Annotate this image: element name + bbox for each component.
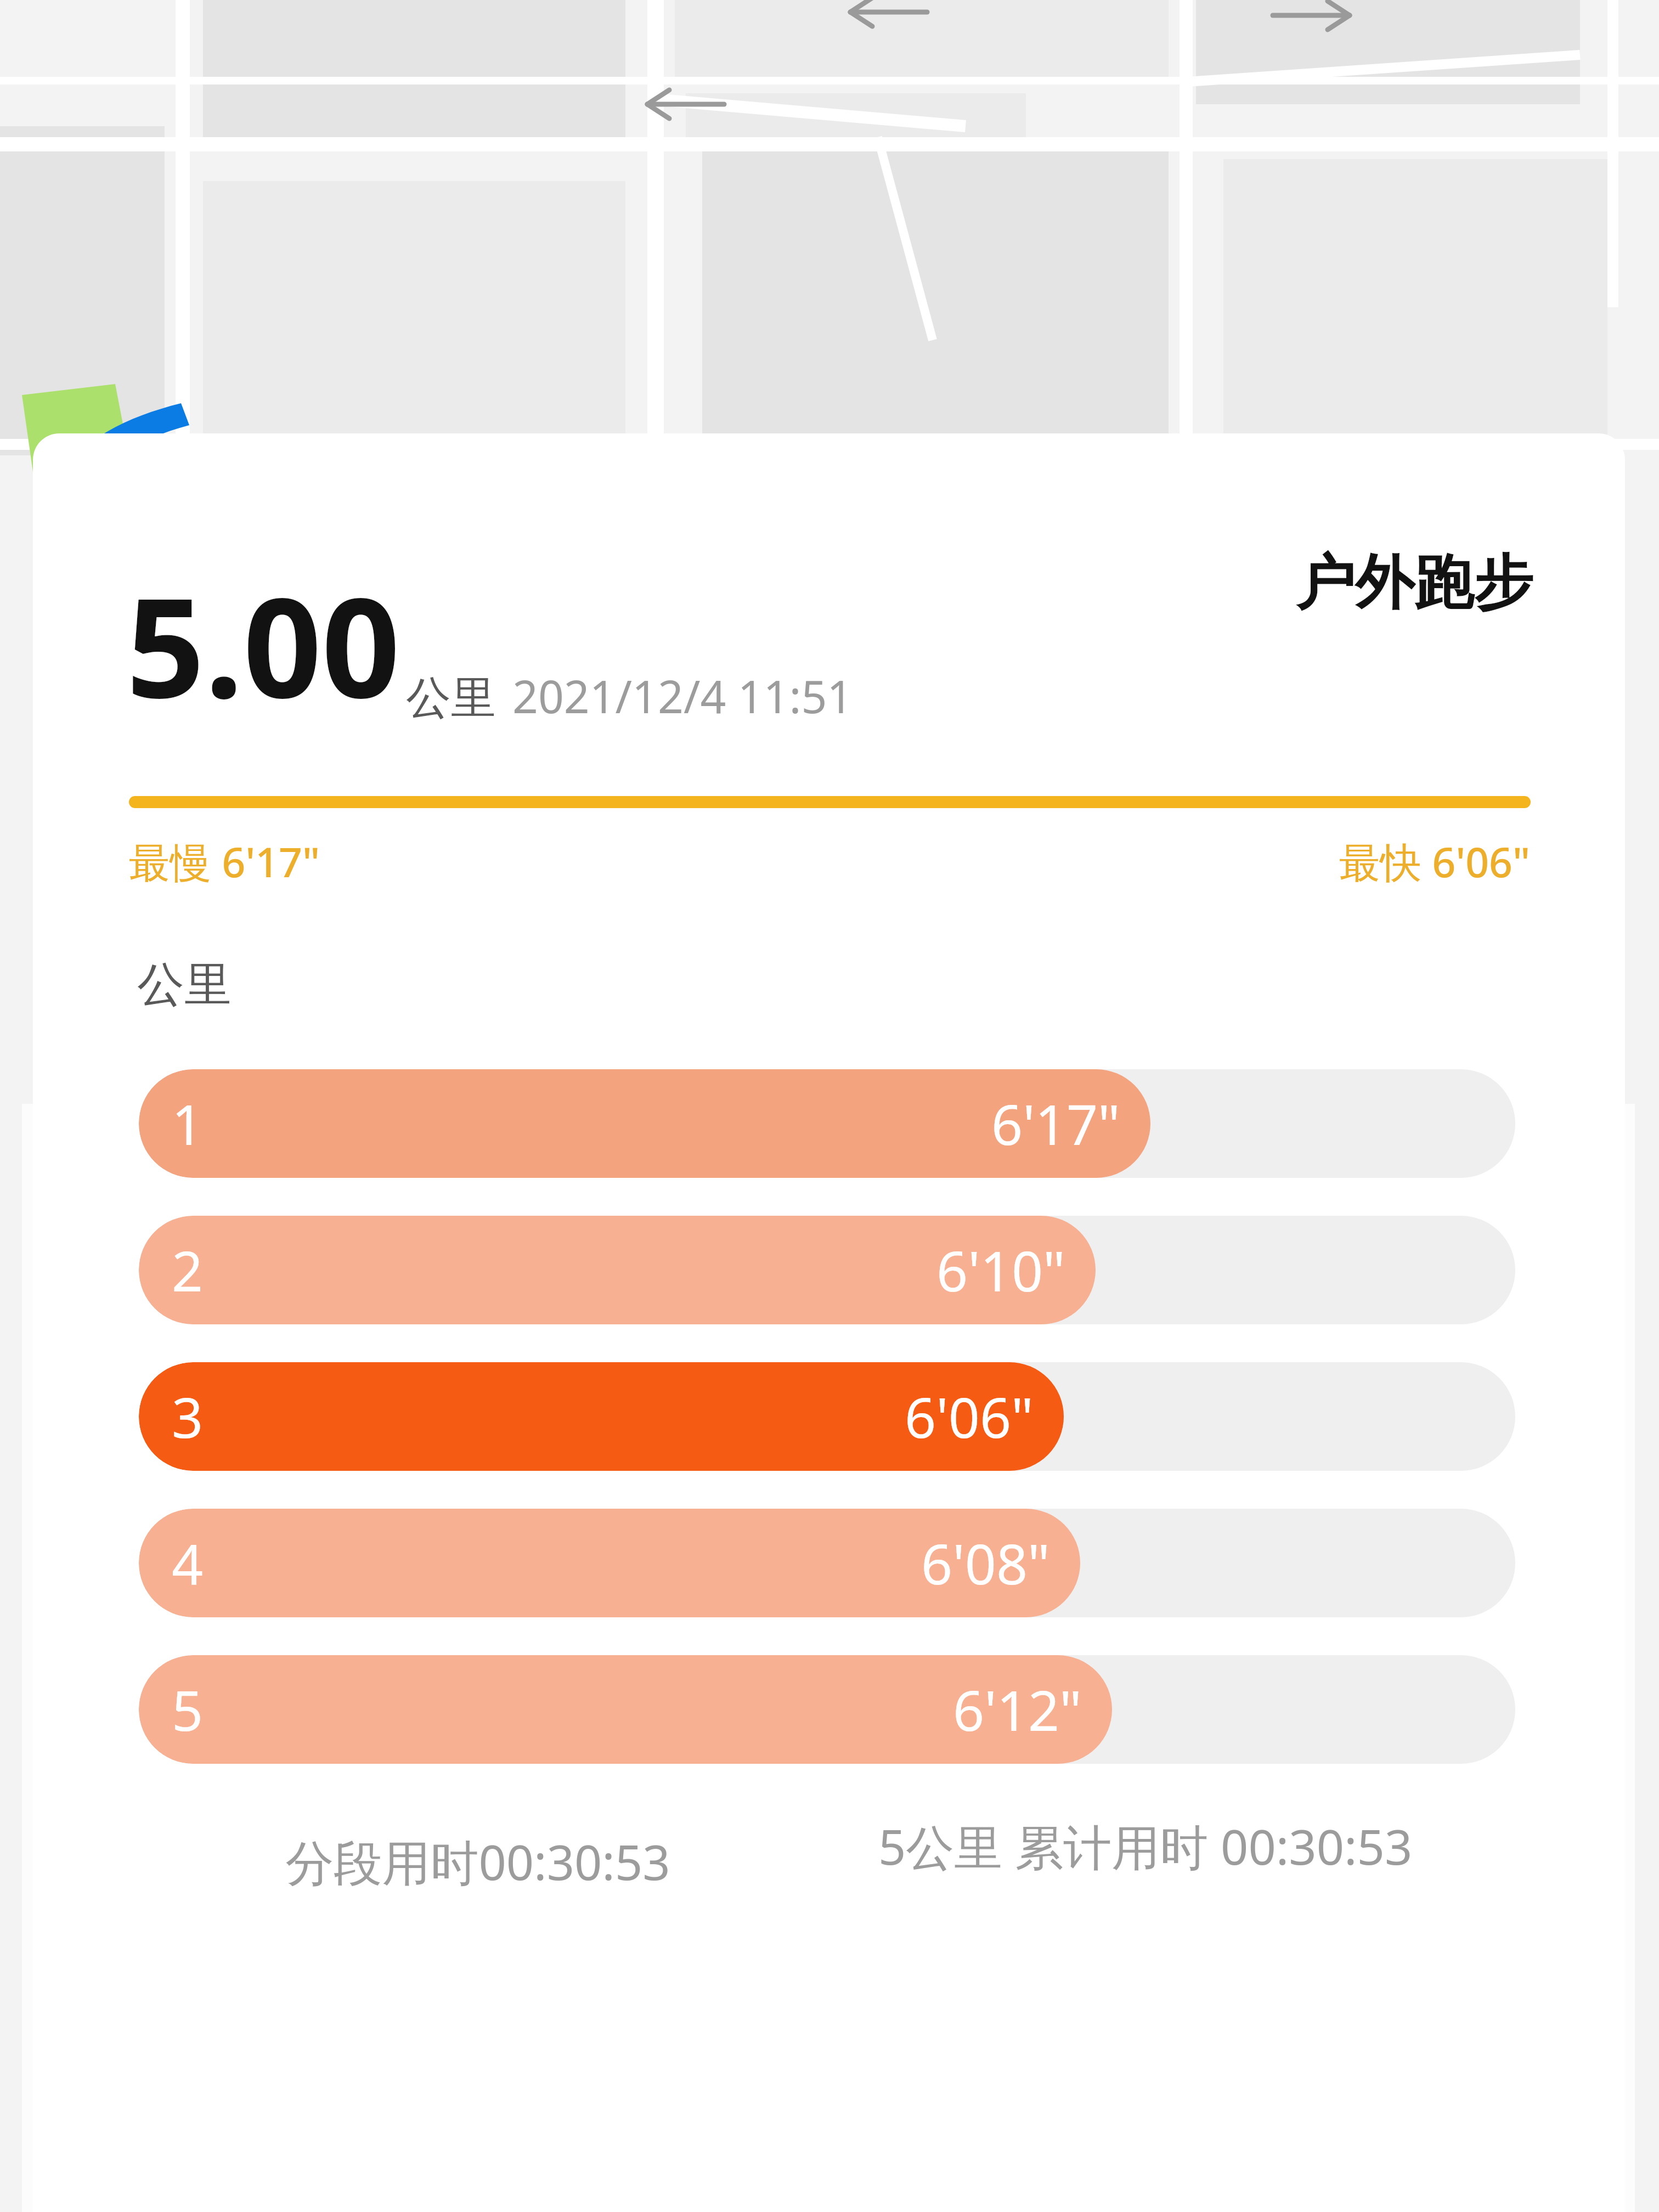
button[interactable]: 3: [139, 1362, 1515, 1471]
staticText: 6'10": [936, 1233, 1065, 1307]
staticText: 4: [172, 1526, 204, 1600]
staticText: 6'06": [905, 1379, 1034, 1454]
staticText: 2021/12/4 11:51: [512, 665, 853, 726]
staticText: 5: [172, 1672, 204, 1747]
staticText: 2: [172, 1233, 204, 1307]
button[interactable]: 1: [139, 1069, 1515, 1178]
staticText: 公里: [406, 670, 496, 726]
button[interactable]: 2: [139, 1216, 1515, 1324]
staticText: 户外跑步: [1296, 546, 1533, 620]
staticText: 最慢 6'17": [129, 833, 320, 889]
staticText: 3: [172, 1379, 204, 1454]
staticText: 5.00: [126, 551, 400, 738]
button[interactable]: 4: [139, 1509, 1515, 1617]
staticText: 最快 6'06": [1339, 833, 1531, 889]
staticText: 6'12": [953, 1672, 1082, 1747]
staticText: 5公里 累计用时 00:30:53: [878, 1813, 1413, 1879]
staticText: 1: [172, 1086, 204, 1161]
button[interactable]: 5: [139, 1655, 1515, 1764]
staticText: 公里: [137, 955, 232, 1014]
staticText: 6'08": [921, 1526, 1050, 1600]
staticText: 6'17": [991, 1086, 1120, 1161]
staticText: 分段用时00:30:53: [285, 1829, 670, 1894]
